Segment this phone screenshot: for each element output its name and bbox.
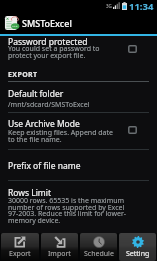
staticText: EXPORT	[8, 70, 38, 80]
button[interactable]: Prefix of file name	[8, 160, 81, 172]
staticText: Setting	[126, 249, 150, 259]
other: Settings	[132, 236, 144, 248]
other: Schedule	[93, 236, 105, 248]
other: Export	[14, 236, 26, 248]
staticText: Import	[48, 249, 71, 259]
button[interactable]: Import	[41, 233, 78, 261]
button[interactable]: Password protected	[8, 36, 88, 48]
button[interactable]: Rows Limit	[8, 187, 52, 199]
button[interactable]: Toggle	[128, 126, 137, 134]
staticText: memory device.	[8, 216, 61, 226]
staticText: 3G	[106, 3, 112, 9]
staticText: number of rows supported by Excel	[8, 203, 125, 213]
staticText: 11:34	[129, 0, 154, 11]
button[interactable]: Use Archive Mode	[8, 118, 80, 130]
staticText: protect your export file.	[8, 51, 86, 61]
button[interactable]: Toggle	[128, 45, 137, 53]
staticText: SMSToExcel	[22, 17, 72, 29]
staticText: Export	[9, 249, 31, 259]
staticText: 97-2003. Reduce this limit for lower-	[8, 209, 127, 219]
button[interactable]: Settings	[119, 233, 156, 261]
button[interactable]: Schedule	[80, 233, 117, 261]
staticText: /mnt/sdcard/SMSToExcel	[8, 100, 90, 110]
staticText: You could set a password to	[8, 44, 100, 54]
button[interactable]: Export	[1, 233, 39, 261]
button[interactable]: Default folder	[8, 88, 64, 100]
staticText: Keep existing files. Append date	[8, 128, 114, 138]
button[interactable]: SMSToExcel	[0, 11, 157, 34]
staticText: to the file name.	[8, 135, 62, 145]
other: Import	[54, 236, 66, 248]
staticText: 30000 rows. 65535 is the maximum	[8, 196, 125, 206]
staticText: Schedule	[84, 249, 114, 259]
